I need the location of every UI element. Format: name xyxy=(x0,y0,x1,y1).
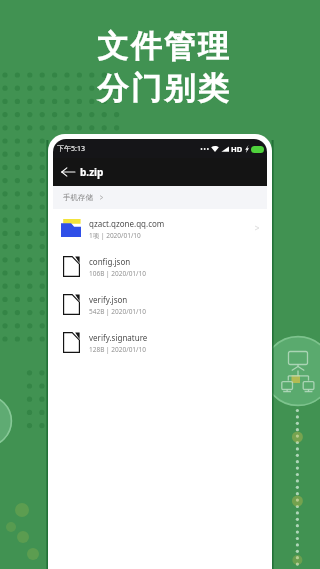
staticText: verify.json xyxy=(89,294,128,305)
button[interactable]: qzact.qzone.qq.com xyxy=(53,209,267,247)
staticText: qzact.qzone.qq.com xyxy=(89,218,165,229)
staticText: b.zip xyxy=(80,165,104,179)
button[interactable]: 手机存储 xyxy=(53,186,267,209)
staticText: 分门别类 xyxy=(96,69,230,108)
staticText: 128B | 2020/01/10 xyxy=(89,345,146,354)
button[interactable]: config.json xyxy=(53,247,267,285)
staticText: config.json xyxy=(89,256,131,267)
staticText: HD xyxy=(231,144,243,154)
button[interactable]: Back xyxy=(60,164,76,180)
staticText: 542B | 2020/01/10 xyxy=(89,307,146,316)
staticText: 手机存储 xyxy=(63,193,93,202)
staticText: 文件管理 xyxy=(96,27,230,66)
button[interactable]: verify.signature xyxy=(53,323,267,361)
staticText: 1项 | 2020/01/10 xyxy=(89,231,141,240)
staticText: 下午5:13 xyxy=(57,144,85,154)
button[interactable]: verify.json xyxy=(53,285,267,323)
staticText: verify.signature xyxy=(89,332,148,343)
staticText: 106B | 2020/01/10 xyxy=(89,269,146,278)
